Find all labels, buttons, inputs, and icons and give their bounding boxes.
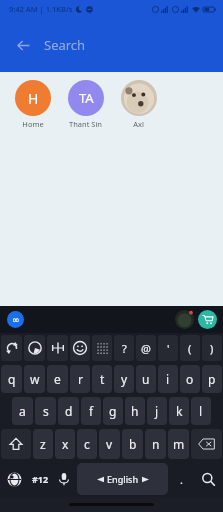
staticText: c <box>84 436 90 452</box>
button[interactable]: b <box>122 429 143 459</box>
button[interactable]: j <box>147 397 167 425</box>
staticText: n <box>152 436 160 452</box>
button[interactable]: e <box>47 365 68 393</box>
button[interactable]: f <box>81 397 101 425</box>
button[interactable]: @ <box>136 335 156 361</box>
staticText: ) <box>210 341 214 356</box>
staticText: l <box>199 403 203 419</box>
button[interactable]: Search <box>40 18 223 72</box>
staticText: u <box>142 371 150 387</box>
staticText: Axl <box>133 119 144 129</box>
button[interactable]: h <box>125 397 145 425</box>
staticText: b <box>129 436 137 452</box>
staticText: e <box>54 371 61 387</box>
button[interactable]: m <box>168 429 189 459</box>
staticText: p <box>208 371 216 387</box>
staticText: English <box>107 473 139 485</box>
staticText: z <box>40 436 46 452</box>
button[interactable]: ? <box>114 335 134 361</box>
button[interactable]: Back <box>6 28 40 62</box>
button[interactable]: g <box>103 397 123 425</box>
button[interactable]: Key <box>92 335 112 361</box>
staticText: q <box>8 371 16 387</box>
button[interactable]: Shift <box>1 429 31 459</box>
staticText: h <box>131 403 139 419</box>
button[interactable]: r <box>70 365 90 393</box>
staticText: @ <box>141 341 151 356</box>
button[interactable]: Key <box>47 335 68 361</box>
staticText: t <box>100 371 105 387</box>
staticText: k <box>176 403 183 419</box>
button[interactable]: i <box>158 365 178 393</box>
button[interactable]: #12 <box>29 463 51 495</box>
button[interactable]: Backspace <box>191 429 222 459</box>
button[interactable]: Voice input <box>53 463 75 495</box>
button[interactable]: Key <box>24 335 45 361</box>
button[interactable]: k <box>169 397 189 425</box>
staticText: ( <box>188 341 192 356</box>
staticText: f <box>89 403 94 419</box>
staticText: o <box>186 371 194 387</box>
staticText: TA <box>79 89 94 107</box>
button[interactable]: y <box>114 365 134 393</box>
button[interactable]: z <box>33 429 53 459</box>
staticText: v <box>106 436 113 452</box>
staticText: y <box>121 371 128 387</box>
staticText: a <box>19 403 26 419</box>
button[interactable]: o <box>180 365 200 393</box>
button[interactable]: . <box>170 463 192 495</box>
staticText: m <box>173 436 185 452</box>
button[interactable]: l <box>191 397 211 425</box>
button[interactable]: TA <box>59 80 112 129</box>
button[interactable]: Axl <box>112 80 165 129</box>
button[interactable]: q <box>1 365 22 393</box>
button[interactable]: x <box>55 429 75 459</box>
button[interactable]: n <box>145 429 166 459</box>
staticText: s <box>43 403 49 419</box>
staticText: j <box>155 403 159 419</box>
button[interactable]: Keyboard assistant <box>7 311 24 328</box>
staticText: d <box>65 403 73 419</box>
staticText: r <box>78 371 83 387</box>
staticText: H <box>28 89 39 108</box>
staticText: w <box>30 371 40 387</box>
staticText: Thant Sin <box>69 119 102 129</box>
button[interactable]: Profile <box>175 310 194 329</box>
button[interactable]: t <box>92 365 112 393</box>
button[interactable]: ) <box>202 335 222 361</box>
button[interactable]: Key <box>1 335 22 361</box>
staticText: ∞ <box>12 315 20 325</box>
button[interactable]: ' <box>158 335 178 361</box>
staticText: g <box>109 403 117 419</box>
button[interactable]: Shopping cart <box>198 310 217 329</box>
button[interactable]: p <box>202 365 222 393</box>
button[interactable]: Key <box>70 335 90 361</box>
staticText: i <box>166 371 170 387</box>
staticText: #12 <box>32 473 49 485</box>
staticText: Home <box>22 119 44 129</box>
button[interactable]: ( <box>180 335 200 361</box>
button[interactable]: w <box>24 365 45 393</box>
button[interactable]: d <box>58 397 79 425</box>
button[interactable]: u <box>136 365 156 393</box>
staticText: . <box>180 472 183 487</box>
button[interactable]: s <box>35 397 56 425</box>
button[interactable]: Change language <box>1 463 27 495</box>
button[interactable]: v <box>99 429 120 459</box>
staticText: Search <box>44 36 86 54</box>
button[interactable]: a <box>12 397 33 425</box>
button[interactable]: Search <box>194 463 222 495</box>
staticText: x <box>62 436 69 452</box>
button[interactable]: H <box>6 80 59 129</box>
staticText: 9:42 AM | 1.1KB/s <box>9 4 73 14</box>
staticText: ? <box>122 341 127 356</box>
staticText: ' <box>167 341 170 356</box>
button[interactable]: c <box>77 429 97 459</box>
button[interactable]: English <box>77 463 168 495</box>
